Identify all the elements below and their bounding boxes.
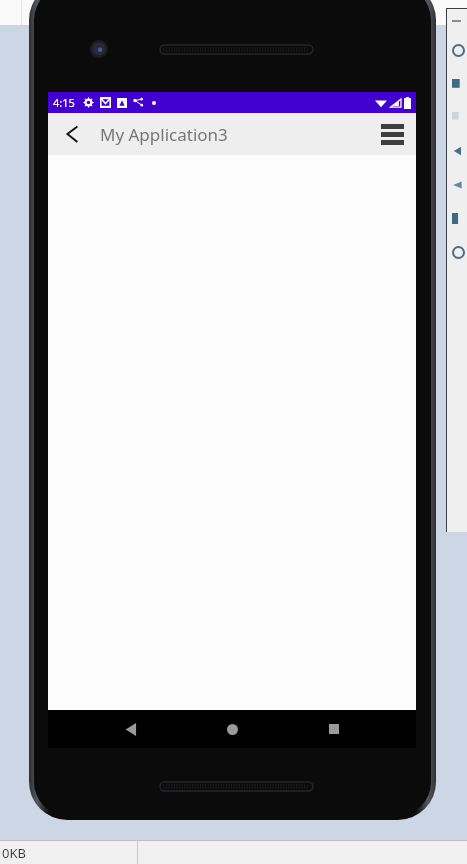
- button[interactable]: Home: [213, 710, 251, 748]
- button[interactable]: Menu: [374, 116, 410, 152]
- button[interactable]: Back: [112, 710, 150, 748]
- button[interactable]: Tool: [452, 79, 463, 90]
- button[interactable]: Navigate up: [56, 117, 90, 151]
- staticText: My Application3: [100, 123, 228, 146]
- button[interactable]: Rotate: [452, 179, 464, 191]
- staticText: 4:15: [53, 95, 75, 110]
- staticText: 0KB: [2, 844, 26, 862]
- button[interactable]: Tool: [452, 44, 465, 57]
- button[interactable]: Tool: [452, 112, 463, 123]
- button[interactable]: Recent apps: [315, 710, 353, 748]
- button[interactable]: Tool: [452, 246, 465, 259]
- button[interactable]: Tool: [452, 213, 463, 224]
- button[interactable]: Back: [452, 145, 464, 157]
